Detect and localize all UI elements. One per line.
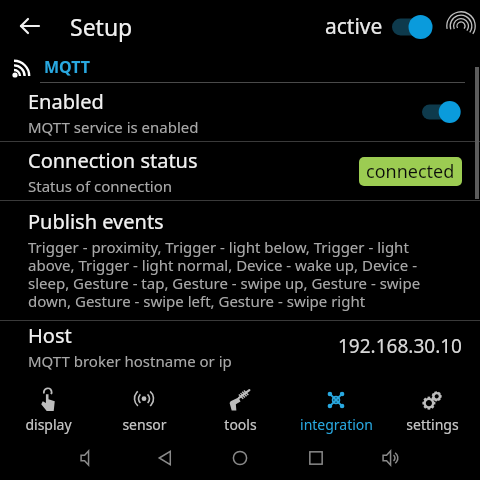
button[interactable]: Volume up [374, 441, 408, 475]
button[interactable]: Host [0, 321, 480, 371]
staticText: Enabled [28, 88, 104, 115]
button[interactable]: Home [223, 441, 257, 475]
staticText: integration [300, 415, 373, 434]
button[interactable]: sensor [96, 384, 192, 436]
button[interactable]: Connection status [0, 142, 480, 200]
button[interactable]: Publish events [0, 201, 480, 320]
staticText: 192.168.30.10 [338, 333, 462, 359]
staticText: connected [366, 159, 455, 184]
staticText: settings [406, 415, 459, 434]
staticText: Status of connection [28, 176, 173, 196]
button[interactable]: Recents [299, 441, 333, 475]
button[interactable]: Back [148, 441, 182, 475]
button[interactable]: integration [288, 384, 384, 436]
staticText: sensor [122, 415, 167, 434]
staticText: active [325, 12, 383, 41]
staticText: Host [28, 322, 72, 349]
staticText: MQTT service is enabled [28, 117, 199, 137]
button[interactable]: active [325, 12, 438, 41]
button[interactable]: Fingerprint [444, 9, 478, 43]
button[interactable]: settings [384, 384, 480, 436]
staticText: MQTT broker hostname or ip [28, 351, 232, 371]
button[interactable]: Enabled [0, 83, 480, 141]
staticText: Trigger - proximity, Trigger - light bel… [28, 237, 458, 312]
staticText: tools [224, 415, 257, 434]
button[interactable]: display [0, 384, 96, 436]
button[interactable]: Back [8, 4, 52, 48]
staticText: Connection status [28, 147, 198, 174]
button[interactable]: Volume down [72, 441, 106, 475]
staticText: Publish events [28, 208, 164, 235]
staticText: display [25, 415, 72, 434]
button[interactable]: tools [192, 384, 288, 436]
staticText: Setup [70, 11, 133, 42]
staticText: MQTT [44, 56, 91, 78]
